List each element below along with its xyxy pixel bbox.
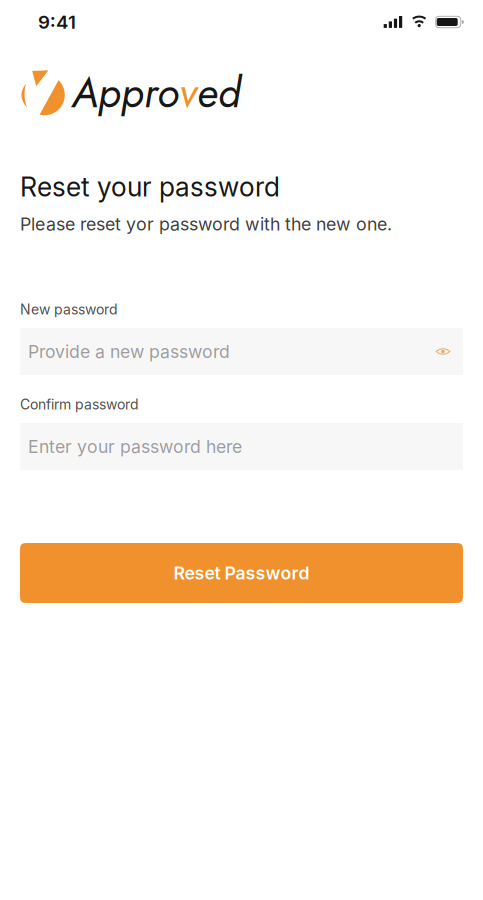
staticText: Reset Password (173, 562, 309, 584)
staticText: ed (197, 63, 241, 123)
staticText: Reset your password (20, 171, 280, 203)
button[interactable]: Reset Password (20, 543, 463, 603)
staticText: 9:41 (38, 11, 76, 33)
button[interactable]: Show password (428, 336, 458, 366)
staticText: Enter your password here (28, 436, 242, 457)
staticText: v (179, 63, 197, 123)
staticText: Confirm password (20, 396, 139, 413)
staticText: Provide a new password (28, 341, 230, 362)
staticText: Please reset yor password with the new o… (20, 213, 392, 235)
staticText: Appro (72, 63, 179, 123)
staticText: New password (20, 301, 118, 318)
